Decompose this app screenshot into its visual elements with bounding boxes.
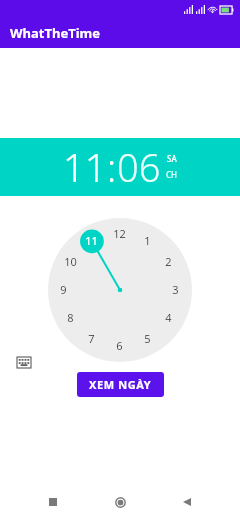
button[interactable]: SA — [167, 153, 177, 164]
staticText: 12 — [113, 226, 126, 241]
staticText: 2 — [165, 254, 172, 269]
button[interactable]: Home — [109, 491, 131, 513]
staticText: 3 — [172, 282, 179, 297]
button[interactable]: 11 — [63, 141, 107, 193]
staticText: WhatTheTime — [10, 24, 100, 42]
staticText: : — [107, 141, 117, 193]
button[interactable]: 06 — [117, 141, 161, 193]
button[interactable]: XEM NGÀY — [77, 372, 164, 397]
button[interactable]: Chuyển sang nhập bàn phím — [14, 352, 34, 372]
staticText: 10 — [64, 254, 77, 269]
staticText: 9 — [60, 282, 67, 297]
button[interactable]: 1 — [48, 218, 192, 362]
button[interactable]: Back — [176, 491, 198, 513]
button[interactable]: CH — [166, 169, 178, 180]
staticText: XEM NGÀY — [89, 377, 152, 392]
staticText: 5 — [144, 331, 151, 346]
button[interactable]: Recents — [42, 491, 64, 513]
staticText: 11 — [85, 233, 98, 248]
staticText: 6 — [116, 338, 123, 353]
staticText: 1 — [144, 233, 151, 248]
staticText: 4 — [165, 310, 172, 325]
staticText: 8 — [67, 310, 74, 325]
staticText: 7 — [88, 331, 95, 346]
